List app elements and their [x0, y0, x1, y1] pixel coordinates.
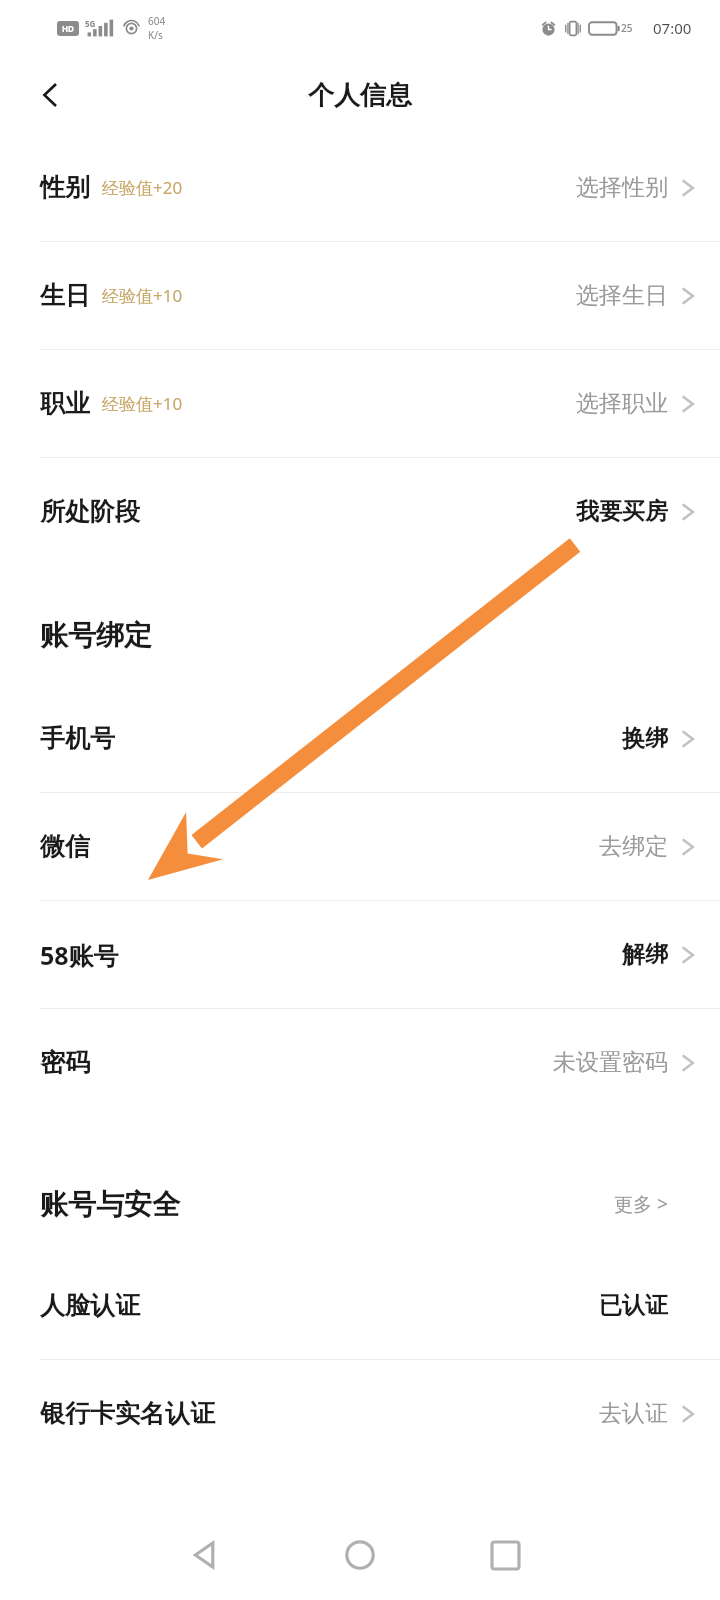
button[interactable]: Back: [175, 1525, 235, 1585]
staticText: 更多 >: [614, 1191, 668, 1217]
staticText: 选择生日: [576, 281, 668, 310]
staticText: 性别: [40, 172, 90, 203]
staticText: 银行卡实名认证: [40, 1398, 215, 1429]
button[interactable]: 更多 >: [608, 1185, 674, 1223]
button[interactable]: 58账号: [0, 901, 720, 1008]
staticText: 生日: [40, 280, 90, 311]
staticText: 密码: [40, 1047, 90, 1078]
staticText: HD: [62, 23, 74, 34]
staticText: K/s: [148, 28, 163, 42]
staticText: 经验值+10: [102, 284, 183, 307]
staticText: 604: [148, 14, 166, 28]
staticText: 微信: [40, 831, 90, 862]
button[interactable]: 职业: [0, 350, 720, 457]
staticText: 经验值+10: [102, 392, 183, 415]
staticText: 07:00: [653, 18, 692, 38]
staticText: 去绑定: [599, 832, 668, 861]
button[interactable]: 人脸认证: [0, 1252, 720, 1359]
staticText: 58账号: [40, 938, 119, 972]
staticText: 5G: [85, 18, 96, 29]
button[interactable]: Home: [330, 1525, 390, 1585]
button[interactable]: 银行卡实名认证: [0, 1360, 720, 1467]
staticText: 解绑: [622, 940, 668, 969]
button[interactable]: 生日: [0, 242, 720, 349]
staticText: 所处阶段: [40, 496, 140, 527]
staticText: 选择性别: [576, 173, 668, 202]
button[interactable]: 密码: [0, 1009, 720, 1116]
staticText: 经验值+20: [102, 176, 183, 199]
staticText: 个人信息: [308, 79, 412, 112]
staticText: 职业: [40, 388, 90, 419]
staticText: 换绑: [622, 724, 668, 753]
staticText: 选择职业: [576, 389, 668, 418]
button[interactable]: 性别: [0, 134, 720, 241]
staticText: 去认证: [599, 1399, 668, 1428]
button[interactable]: Back: [22, 67, 78, 123]
staticText: 25: [621, 21, 641, 35]
staticText: 未设置密码: [553, 1048, 668, 1077]
staticText: 账号绑定: [40, 618, 152, 653]
button[interactable]: 手机号: [0, 685, 720, 792]
button[interactable]: 微信: [0, 793, 720, 900]
staticText: 已认证: [599, 1291, 668, 1320]
staticText: 我要买房: [576, 497, 668, 526]
button[interactable]: 所处阶段: [0, 458, 720, 565]
button[interactable]: Recent apps: [475, 1525, 535, 1585]
staticText: 手机号: [40, 723, 115, 754]
staticText: 账号与安全: [40, 1187, 180, 1222]
staticText: 人脸认证: [40, 1290, 140, 1321]
